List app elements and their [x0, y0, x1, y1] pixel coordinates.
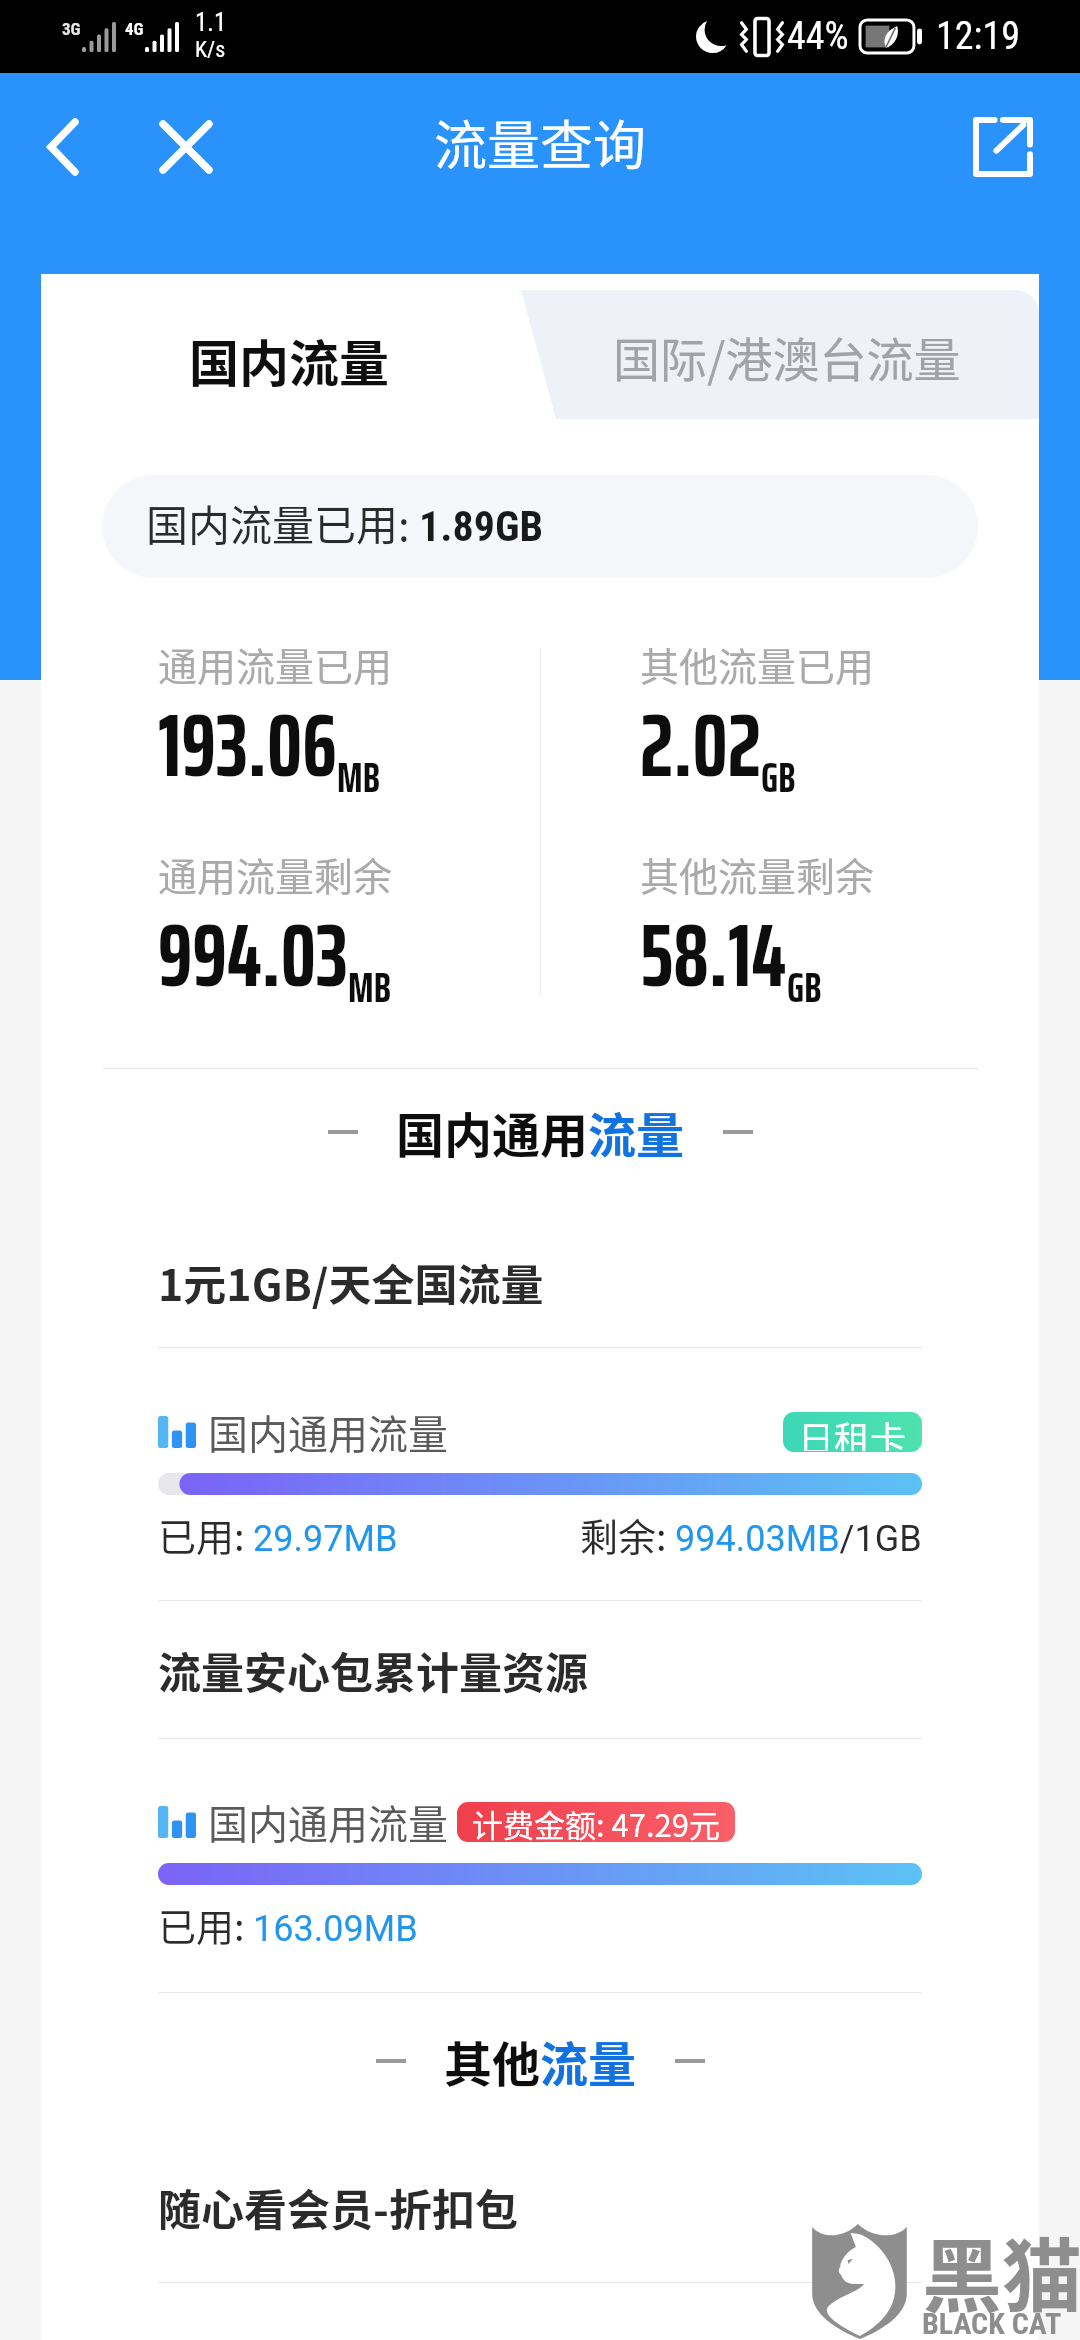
button[interactable]: Back — [24, 105, 102, 189]
staticText: 2.02 — [640, 676, 761, 815]
staticText: 3G — [62, 19, 81, 39]
staticText: 其他流量剩余 — [640, 846, 875, 902]
staticText: 流量安心包累计量资源 — [158, 1639, 588, 1701]
staticText: 国内通用流量 — [208, 1403, 448, 1461]
staticText: 剩余: 994.03MB/1GB — [580, 1507, 922, 1562]
staticText: 流量查询 — [434, 104, 646, 181]
staticText: 国内通用流量 — [208, 1793, 448, 1851]
staticText: 日租卡 — [798, 1412, 907, 1451]
staticText: 已用: 163.09MB — [158, 1897, 418, 1952]
staticText: 4G — [125, 19, 144, 39]
button[interactable]: Close — [144, 105, 228, 189]
staticText: GB — [787, 954, 822, 1020]
staticText: 其他流量已用 — [640, 636, 875, 692]
button[interactable]: 国内流量 — [41, 274, 521, 420]
staticText: 通用流量已用 — [158, 636, 393, 692]
staticText: 随心看会员-折扣包 — [158, 2176, 518, 2238]
staticText: 44% — [787, 14, 849, 59]
staticText: 1.1 — [195, 8, 227, 37]
staticText: 国内通用流量 — [396, 1097, 685, 1167]
staticText: K/s — [195, 37, 226, 63]
button[interactable]: 国际/港澳台流量 — [560, 290, 1038, 419]
staticText: 193.06 — [158, 676, 337, 815]
staticText: MB — [348, 954, 391, 1020]
staticText: 国际/港澳台流量 — [613, 322, 961, 390]
staticText: MB — [337, 744, 380, 810]
staticText: GB — [761, 744, 796, 810]
staticText: 国内流量已用: 1.89GB — [146, 492, 544, 553]
button[interactable]: Open in browser — [960, 104, 1046, 190]
staticText: 994.03 — [158, 886, 348, 1025]
staticText: 已用: 29.97MB — [158, 1507, 398, 1562]
staticText: 计费金额: 47.29元 — [472, 1802, 720, 1841]
staticText: 通用流量剩余 — [158, 846, 393, 902]
staticText: BLACK CAT — [922, 2306, 1062, 2340]
staticText: 国内流量 — [189, 324, 389, 396]
staticText: 其他流量 — [444, 2026, 637, 2096]
staticText: 黑猫 — [922, 2212, 1080, 2328]
staticText: 1元1GB/天全国流量 — [158, 1251, 544, 1313]
staticText: 58.14 — [640, 886, 787, 1025]
staticText: 12:19 — [936, 14, 1020, 59]
